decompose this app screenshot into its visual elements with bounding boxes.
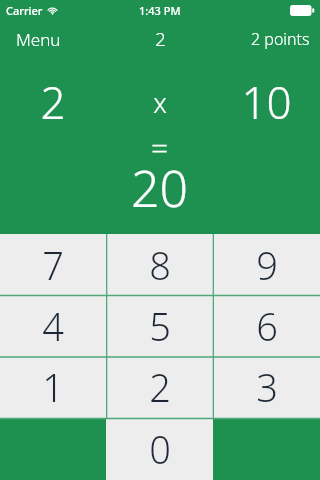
staticText: = [151,127,169,168]
other: Battery full [290,5,315,16]
staticText: 5 [149,300,171,352]
other: Wi-Fi [47,5,58,16]
staticText: 3 [256,361,278,413]
staticText: 2 points [251,28,310,50]
button[interactable]: 7 [0,234,106,295]
button[interactable]: Menu [0,20,73,58]
staticText: 2 [149,361,171,413]
staticText: 20 [131,154,189,222]
staticText: 2 [40,72,66,132]
button[interactable]: 2 [106,356,213,418]
staticText: x [153,84,167,121]
staticText: Carrier [6,3,43,18]
staticText: 6 [256,300,278,352]
staticText: 2 [155,26,166,52]
staticText: 9 [256,239,278,291]
staticText: 7 [42,239,64,291]
button[interactable]: 9 [213,234,320,295]
button[interactable]: 4 [0,295,106,356]
button[interactable]: 6 [213,295,320,356]
button[interactable]: 5 [106,295,213,356]
button[interactable]: 1 [0,356,106,418]
button[interactable]: 0 [106,418,213,480]
staticText: Menu [16,28,61,51]
staticText: 1 [42,361,64,413]
button[interactable] [213,418,320,480]
staticText: 0 [149,423,171,475]
button[interactable]: 3 [213,356,320,418]
staticText: 10 [241,72,292,132]
staticText: 8 [149,239,171,291]
button[interactable]: 8 [106,234,213,295]
staticText: 1:43 PM [139,3,181,18]
button[interactable] [0,418,106,480]
staticText: 4 [42,300,64,352]
button[interactable]: 2 points [239,20,320,58]
